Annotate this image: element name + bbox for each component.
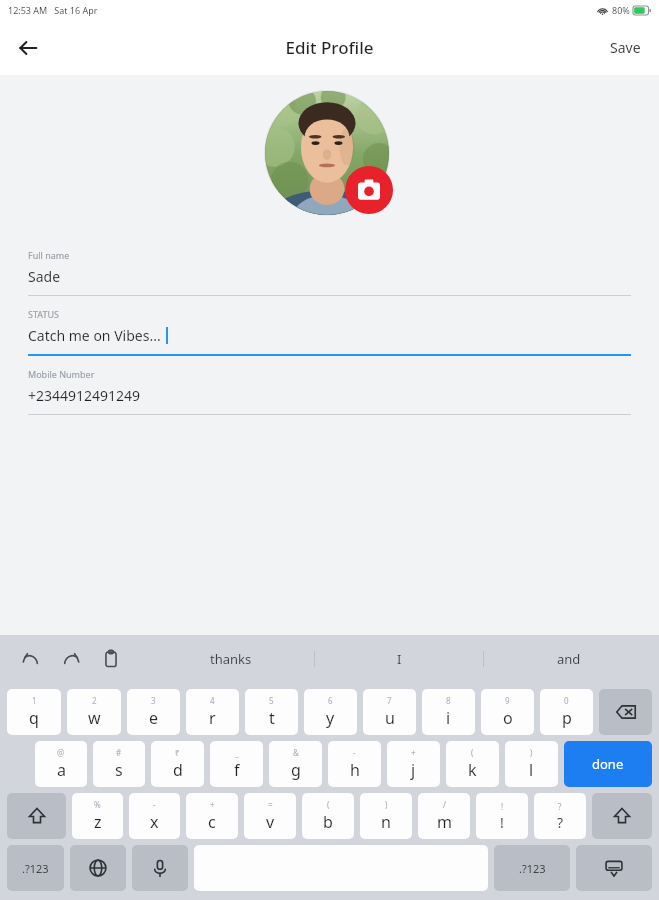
staticText: 9 (505, 695, 510, 706)
button[interactable]: & (269, 741, 322, 787)
button[interactable]: .?123 (7, 845, 64, 891)
staticText: done (592, 755, 624, 773)
button[interactable]: 1 (7, 689, 61, 735)
button[interactable]: shift (7, 793, 66, 839)
staticText: ! (501, 801, 504, 812)
staticText: = (268, 799, 273, 810)
button[interactable]: hide (576, 845, 652, 891)
button[interactable]: and (484, 635, 653, 683)
staticText: i (446, 707, 451, 729)
staticText: 2 (92, 695, 97, 706)
button[interactable]: - (129, 793, 180, 839)
staticText: 80% (612, 4, 630, 16)
button[interactable]: 5 (245, 689, 298, 735)
staticText: g (291, 759, 301, 781)
button[interactable]: mic (132, 845, 188, 891)
staticText: ) (385, 799, 388, 810)
button[interactable]: 3 (127, 689, 180, 735)
staticText: w (88, 707, 101, 729)
staticText: STATUS (28, 308, 59, 320)
staticText: 7 (387, 695, 392, 706)
staticText: z (94, 811, 102, 833)
button[interactable]: + (186, 793, 238, 839)
staticText: r (209, 707, 216, 729)
button[interactable]: backspace (599, 689, 652, 735)
button[interactable]: ? (534, 793, 586, 839)
staticText: _ (235, 747, 239, 758)
button[interactable]: Change photo (345, 166, 393, 214)
staticText: ( (327, 799, 330, 810)
staticText: b (323, 811, 333, 833)
button[interactable]: ) (505, 741, 558, 787)
button[interactable]: thanks (146, 635, 315, 683)
button[interactable]: Full name (0, 237, 659, 296)
staticText: l (529, 759, 534, 781)
staticText: ! (500, 813, 504, 832)
button[interactable]: + (387, 741, 440, 787)
staticText: 0 (564, 695, 569, 706)
button[interactable]: - (328, 741, 381, 787)
staticText: 6 (328, 695, 333, 706)
button[interactable]: 9 (481, 689, 534, 735)
staticText: - (153, 799, 156, 810)
button[interactable]: 0 (540, 689, 593, 735)
staticText: Catch me on Vibes... (28, 326, 161, 345)
staticText: + (411, 747, 416, 758)
staticText: Save (610, 38, 641, 57)
button[interactable]: _ (210, 741, 263, 787)
button[interactable]: shift (592, 793, 652, 839)
button[interactable]: done (564, 741, 652, 787)
staticText: v (266, 811, 275, 833)
staticText: Full name (28, 249, 70, 261)
staticText: Mobile Number (28, 368, 95, 380)
staticText: Sade (28, 267, 61, 286)
button[interactable]: redo (58, 646, 84, 672)
button[interactable]: 7 (363, 689, 416, 735)
button[interactable]: 2 (67, 689, 121, 735)
staticText: 1 (32, 695, 37, 706)
button[interactable]: Save (592, 26, 659, 69)
staticText: thanks (210, 650, 252, 668)
button[interactable]: ) (360, 793, 412, 839)
button[interactable]: # (93, 741, 145, 787)
staticText: .?123 (22, 861, 49, 876)
staticText: t (269, 707, 275, 729)
button[interactable]: Back (6, 26, 50, 70)
button[interactable]: 8 (422, 689, 475, 735)
button[interactable]: undo (18, 646, 44, 672)
button[interactable]: 6 (304, 689, 357, 735)
staticText: 12:53 AM Sat 16 Apr (8, 4, 98, 16)
button[interactable]: % (72, 793, 123, 839)
staticText: & (293, 747, 299, 758)
staticText: o (503, 707, 513, 729)
staticText: / (443, 799, 446, 810)
button[interactable]: STATUS (0, 296, 659, 356)
staticText: e (149, 707, 159, 729)
staticText: y (326, 707, 335, 729)
button[interactable]: Mobile Number (0, 356, 659, 415)
button[interactable]: globe (70, 845, 126, 891)
staticText: ? (558, 801, 562, 812)
button[interactable]: ( (302, 793, 354, 839)
button[interactable]: I (315, 635, 484, 683)
staticText: ₹ (175, 747, 180, 758)
staticText: % (94, 799, 101, 810)
button[interactable]: @ (35, 741, 87, 787)
staticText: q (29, 707, 39, 729)
button[interactable]: ! (476, 793, 528, 839)
button[interactable]: / (418, 793, 470, 839)
button[interactable]: ( (446, 741, 499, 787)
staticText: k (468, 759, 477, 781)
staticText: and (557, 650, 581, 668)
staticText: 8 (446, 695, 451, 706)
staticText: x (150, 811, 159, 833)
staticText: + (210, 799, 215, 810)
button[interactable]: = (244, 793, 296, 839)
button[interactable]: clipboard (98, 646, 124, 672)
button[interactable]: 4 (186, 689, 239, 735)
staticText: I (397, 650, 402, 668)
button[interactable]: .?123 (494, 845, 570, 891)
staticText: Edit Profile (285, 36, 374, 59)
button[interactable]: ₹ (151, 741, 204, 787)
